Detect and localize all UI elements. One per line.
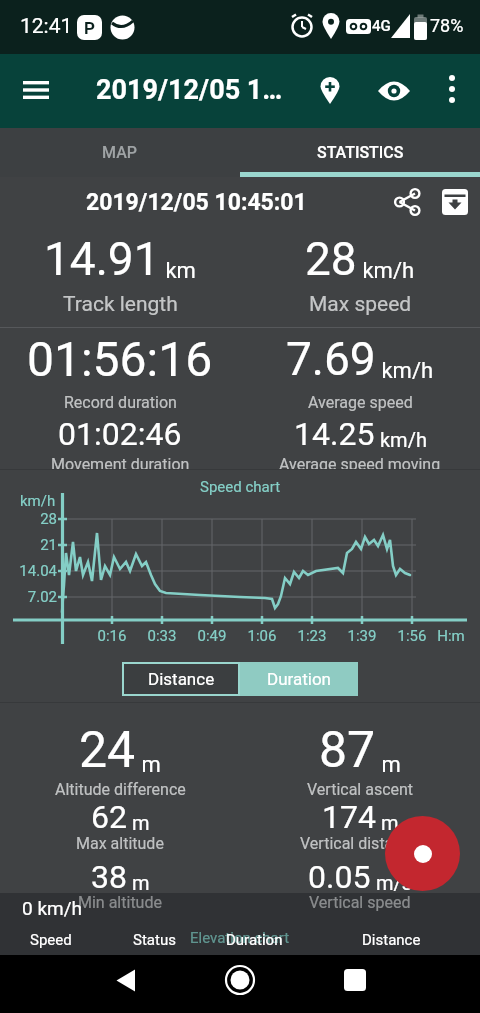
staticText: 7.02 <box>0 588 57 606</box>
button[interactable] <box>385 816 460 891</box>
staticText: 24 <box>79 721 136 780</box>
staticText: Duration <box>267 669 331 689</box>
staticText: m <box>376 752 401 778</box>
staticText: Vertical speed <box>309 893 411 912</box>
staticText: 14.91 <box>44 232 160 286</box>
button[interactable]: STATISTICS <box>240 128 480 177</box>
staticText: 21 <box>0 536 57 554</box>
button[interactable] <box>96 956 154 1004</box>
staticText: 1:56 <box>387 627 437 645</box>
staticText: m <box>127 871 150 894</box>
button[interactable] <box>306 67 354 115</box>
staticText: km <box>160 258 196 284</box>
staticText: 0.05 <box>308 858 371 896</box>
staticText: Vertical ascent <box>307 780 414 799</box>
staticText: Max speed <box>309 292 412 317</box>
staticText: 12:41 <box>20 14 73 39</box>
staticText: m/s <box>371 871 413 894</box>
staticText: km/h <box>375 428 427 451</box>
staticText: Elevation chart <box>190 929 290 947</box>
staticText: 0 km/h <box>22 897 82 919</box>
staticText: P <box>84 18 95 38</box>
button[interactable] <box>370 67 418 115</box>
staticText: 28 <box>0 510 57 528</box>
staticText: Duration <box>226 931 283 949</box>
staticText: 7.69 <box>286 332 376 386</box>
button[interactable] <box>430 67 474 111</box>
staticText: Vertical distance <box>300 834 420 853</box>
button[interactable] <box>432 179 478 225</box>
staticText: 0:33 <box>137 627 187 645</box>
staticText: 78% <box>430 15 464 36</box>
staticText: Average speed <box>308 393 413 412</box>
staticText: 87 <box>319 721 376 780</box>
staticText: Max altitude <box>76 834 164 853</box>
staticText: Movement duration <box>51 455 190 469</box>
staticText: Min altitude <box>78 893 162 912</box>
staticText: Altitude difference <box>55 780 186 799</box>
staticText: MAP <box>102 143 138 162</box>
staticText: 1:06 <box>237 627 287 645</box>
staticText: m <box>127 811 150 834</box>
staticText: Speed <box>30 931 72 949</box>
button[interactable] <box>326 956 384 1004</box>
staticText: 14.25 <box>294 415 375 453</box>
button[interactable]: MAP <box>0 128 240 177</box>
staticText: 4G <box>372 17 391 35</box>
staticText: 0:49 <box>187 627 237 645</box>
staticText: 14.04 <box>0 562 57 580</box>
staticText: 1:39 <box>337 627 387 645</box>
button[interactable] <box>384 179 430 225</box>
button[interactable]: Duration <box>240 662 358 696</box>
staticText: 1:23 <box>287 627 337 645</box>
staticText: H:m <box>426 627 476 645</box>
staticText: 2019/12/05 1… <box>96 74 283 106</box>
staticText: 38 <box>91 858 127 896</box>
staticText: STATISTICS <box>317 143 404 162</box>
staticText: Average speed moving <box>279 455 441 469</box>
staticText: 0:16 <box>87 627 137 645</box>
staticText: 174 <box>322 798 376 836</box>
button[interactable] <box>211 956 269 1004</box>
button[interactable] <box>12 66 60 114</box>
staticText: km/h <box>20 492 56 510</box>
staticText: km/h <box>357 258 415 284</box>
staticText: m <box>136 752 161 778</box>
staticText: 01:02:46 <box>58 415 182 453</box>
staticText: Track length <box>63 292 178 317</box>
staticText: 28 <box>305 232 357 286</box>
staticText: m <box>376 811 399 834</box>
staticText: Status <box>133 931 176 949</box>
staticText: Speed chart <box>200 478 281 496</box>
staticText: Record duration <box>64 393 177 412</box>
staticText: Distance <box>362 931 421 949</box>
staticText: km/h <box>376 358 434 384</box>
staticText: Distance <box>148 669 215 689</box>
staticText: 01:56:16 <box>27 331 213 387</box>
staticText: 2019/12/05 10:45:01 <box>86 189 307 216</box>
staticText: 62 <box>91 798 127 836</box>
button[interactable]: Distance <box>122 662 240 696</box>
